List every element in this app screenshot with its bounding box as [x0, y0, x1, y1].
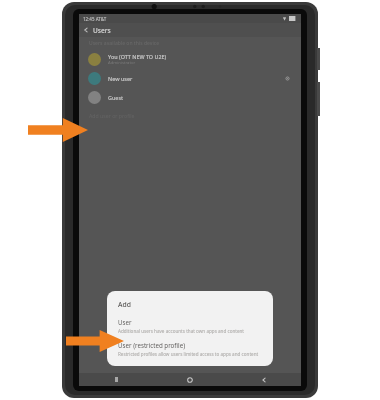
button[interactable]: Navigate up	[79, 23, 93, 37]
staticText: You (OTT NEW TO U2E)	[108, 53, 167, 60]
staticText: Users available on this device	[89, 40, 160, 47]
staticText: 12:45 AT&T	[83, 16, 107, 22]
staticText: Restricted profiles allow users limited …	[118, 351, 259, 357]
button[interactable]: New user	[79, 69, 301, 88]
staticText: User (restricted profile)	[118, 341, 186, 349]
staticText: New user	[108, 75, 133, 82]
button[interactable]: User (restricted profile)	[118, 341, 264, 357]
button[interactable]: You (OTT NEW TO U2E)	[79, 50, 301, 69]
staticText: Administrator	[108, 60, 136, 66]
button[interactable]: User settings	[282, 73, 293, 84]
staticText: Guest	[108, 94, 124, 101]
button[interactable]: Recents	[79, 373, 153, 386]
staticText: Add	[118, 300, 131, 309]
staticText: ▼	[283, 16, 287, 21]
button[interactable]: User	[118, 318, 264, 334]
staticText: Additional users have accounts that own …	[118, 328, 245, 334]
staticText: User	[118, 318, 132, 326]
button[interactable]: Back	[227, 373, 301, 386]
staticText: Users	[93, 26, 111, 35]
button[interactable]: Home	[153, 373, 227, 386]
button[interactable]: Guest	[79, 88, 301, 107]
